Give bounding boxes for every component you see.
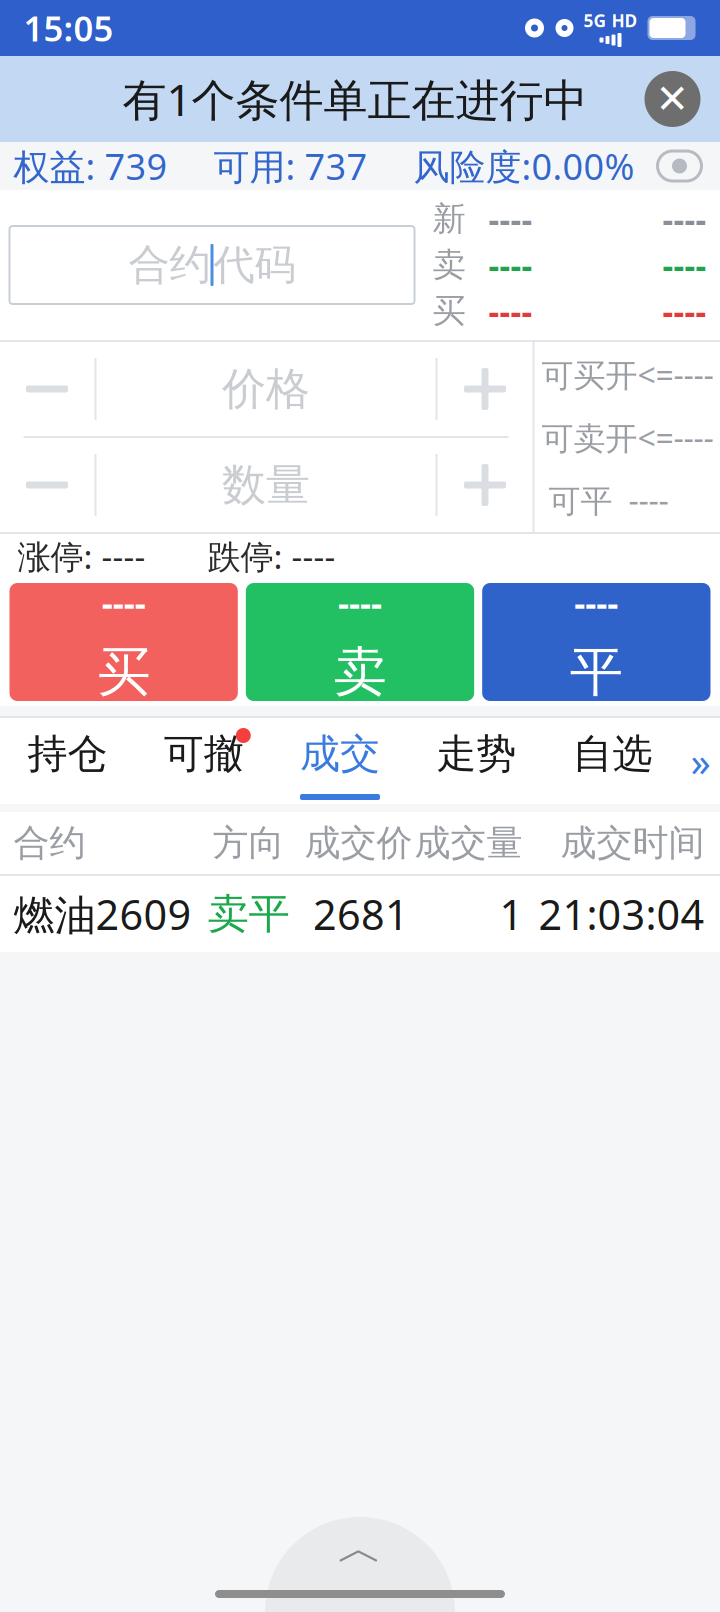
staticText: 成交时间 (560, 821, 704, 865)
staticText: ---- (102, 579, 146, 625)
staticText: 可撤 (164, 729, 244, 778)
staticText: 跌停: ---- (207, 534, 335, 578)
button[interactable]: 走势 (408, 718, 544, 804)
staticText: ---- (662, 243, 706, 287)
staticText: 卖 (333, 639, 386, 705)
staticText: 新 (432, 198, 465, 239)
staticText: ---- (488, 289, 532, 333)
staticText: ---- (488, 243, 532, 287)
button[interactable]: 燃油2609 (0, 876, 720, 952)
staticText: 成交量 (414, 821, 522, 865)
button[interactable]: 成交 (272, 718, 408, 804)
staticText: 卖平 (207, 889, 289, 939)
staticText: 价格 (222, 362, 310, 416)
button[interactable]: ---- (9, 583, 238, 701)
staticText: 21:03:04 (538, 887, 704, 941)
staticText: 买 (97, 639, 150, 705)
button[interactable]: 增加 (437, 342, 532, 436)
button[interactable]: 关闭 (634, 56, 710, 142)
button[interactable]: 更多标签 (680, 718, 720, 804)
staticText: 走势 (436, 729, 516, 778)
staticText: ︿ (337, 1520, 382, 1576)
staticText: 涨停: ---- (17, 534, 145, 578)
staticText: ✕ (655, 76, 689, 122)
staticText: ---- (574, 579, 618, 625)
staticText: 成交 (300, 729, 380, 778)
staticText: 可买开<=---- (541, 353, 713, 396)
button[interactable]: 减少 (0, 438, 94, 532)
staticText: 2681 (313, 887, 409, 941)
staticText: 有1个条件单正在进行中 (122, 70, 587, 128)
staticText: 合约 (128, 240, 210, 290)
button[interactable]: 减少 (0, 342, 94, 436)
staticText: ---- (488, 197, 532, 241)
button[interactable]: 增加 (437, 438, 532, 532)
button[interactable]: 隐藏资金 (652, 143, 706, 189)
staticText: ---- (662, 197, 706, 241)
staticText: 可用: 737 (213, 142, 367, 190)
staticText: 买 (432, 290, 465, 331)
staticText: 代码 (213, 240, 295, 290)
staticText: 1 (499, 887, 523, 941)
staticText: 卖 (432, 244, 465, 285)
button[interactable]: ---- (246, 583, 474, 701)
staticText: 合约 (13, 821, 85, 865)
staticText: ---- (338, 579, 382, 625)
staticText: 权益: 739 (13, 142, 167, 190)
button[interactable]: 可撤 (136, 718, 272, 804)
staticText: 持仓 (28, 729, 108, 778)
staticText: 燃油2609 (13, 887, 191, 941)
staticText: 15:05 (23, 5, 113, 51)
staticText: 可平 ---- (548, 479, 668, 521)
staticText: 风险度:0.00% (413, 142, 634, 190)
staticText: ---- (662, 289, 706, 333)
staticText: 方向 (212, 821, 284, 865)
staticText: 可卖开<=---- (541, 416, 713, 459)
staticText: 平 (570, 639, 623, 705)
button[interactable]: ---- (482, 583, 710, 701)
staticText: » (690, 734, 710, 787)
staticText: 成交价 (304, 821, 412, 865)
button[interactable]: 持仓 (0, 718, 136, 804)
staticText: 数量 (222, 458, 310, 512)
staticText: 自选 (572, 729, 652, 778)
button[interactable]: 自选 (544, 718, 680, 804)
staticText: 5G HD (583, 9, 637, 32)
